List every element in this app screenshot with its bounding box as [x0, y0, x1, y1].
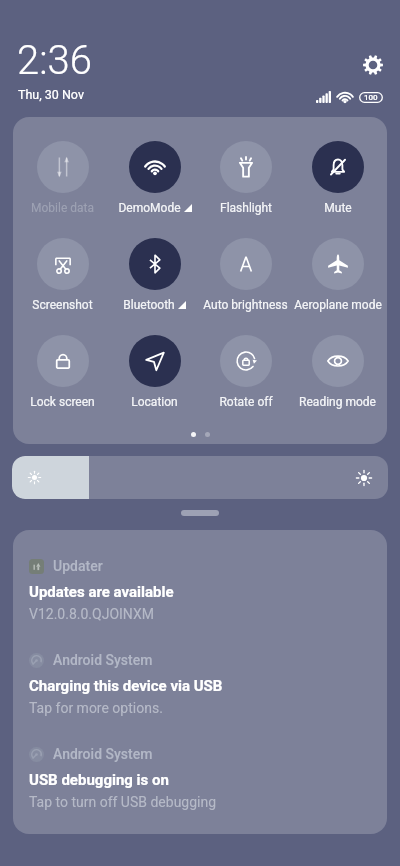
button[interactable]: Android System: [29, 652, 371, 716]
staticText: Updater: [53, 558, 103, 574]
staticText: Mute: [324, 201, 352, 215]
staticText: Location: [131, 395, 178, 409]
button[interactable]: Aeroplane mode: [296, 238, 379, 312]
staticText: Lock screen: [30, 395, 95, 409]
button[interactable]: Location: [113, 335, 196, 409]
button[interactable]: Updater: [29, 558, 371, 622]
button[interactable]: Mute: [296, 141, 379, 215]
button[interactable]: Reading mode: [296, 335, 379, 409]
button[interactable]: DemoMode: [113, 141, 196, 215]
button[interactable]: Settings: [359, 51, 386, 78]
staticText: Auto brightness: [203, 298, 288, 312]
staticText: Aeroplane mode: [294, 298, 382, 312]
button[interactable]: Mobile data: [21, 141, 104, 215]
staticText: Updates are available: [29, 583, 174, 601]
staticText: Tap to turn off USB debugging: [29, 794, 217, 810]
button[interactable]: Brightness: [12, 456, 388, 499]
button[interactable]: Android System: [29, 746, 371, 810]
staticText: USB debugging is on: [29, 771, 169, 789]
button[interactable]: Bluetooth: [113, 238, 196, 312]
button[interactable]: Screenshot: [21, 238, 104, 312]
staticText: Android System: [53, 746, 153, 762]
staticText: Tap for more options.: [29, 700, 163, 716]
staticText: Android System: [53, 652, 153, 668]
staticText: Flashlight: [220, 201, 272, 215]
staticText: Thu, 30 Nov: [18, 87, 84, 102]
button[interactable]: Auto brightness: [204, 238, 287, 312]
button[interactable]: Rotate off: [204, 335, 287, 409]
staticText: 100: [364, 93, 378, 102]
staticText: Bluetooth: [123, 298, 175, 312]
button[interactable]: Flashlight: [204, 141, 287, 215]
staticText: Reading mode: [299, 395, 376, 409]
staticText: Charging this device via USB: [29, 677, 223, 695]
button[interactable]: Lock screen: [21, 335, 104, 409]
staticText: Rotate off: [219, 395, 273, 409]
staticText: V12.0.8.0.QJOINXM: [29, 606, 154, 622]
staticText: Mobile data: [31, 201, 94, 215]
staticText: Screenshot: [32, 298, 93, 312]
staticText: 2:36: [17, 37, 92, 84]
staticText: DemoMode: [118, 201, 181, 215]
